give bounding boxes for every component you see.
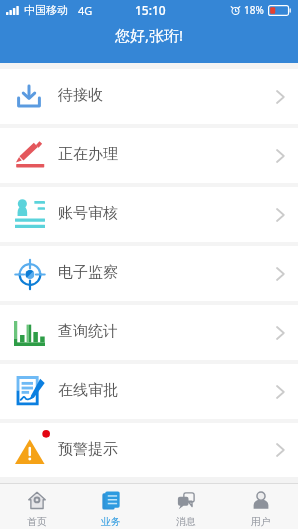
staticText: 18%	[244, 3, 264, 17]
button[interactable]: 查询统计	[0, 305, 298, 360]
button[interactable]: 电子监察	[0, 246, 298, 301]
staticText: 待接收	[58, 86, 103, 105]
staticText: 4G	[78, 3, 93, 18]
button[interactable]: 用户	[223, 484, 298, 529]
button[interactable]: 预警提示	[0, 423, 298, 477]
staticText: 消息	[176, 516, 196, 528]
button[interactable]: 待接收	[0, 69, 298, 124]
staticText: 查询统计	[58, 322, 118, 341]
staticText: 在线审批	[58, 381, 118, 400]
button[interactable]: 首页	[0, 484, 74, 529]
button[interactable]: 正在办理	[0, 128, 298, 183]
staticText: 15:10	[135, 2, 166, 18]
button[interactable]: 账号审核	[0, 187, 298, 242]
button[interactable]: 消息	[148, 484, 223, 529]
button[interactable]: 业务	[74, 484, 148, 529]
staticText: 您好,张珩!	[115, 25, 184, 45]
staticText: 电子监察	[58, 263, 118, 282]
staticText: 用户	[251, 516, 271, 528]
staticText: 正在办理	[58, 145, 118, 164]
staticText: 业务	[101, 516, 121, 528]
button[interactable]: 在线审批	[0, 364, 298, 419]
staticText: 预警提示	[58, 440, 118, 459]
staticText: 中国移动	[24, 3, 68, 17]
staticText: 账号审核	[58, 204, 118, 223]
staticText: 首页	[27, 516, 47, 528]
